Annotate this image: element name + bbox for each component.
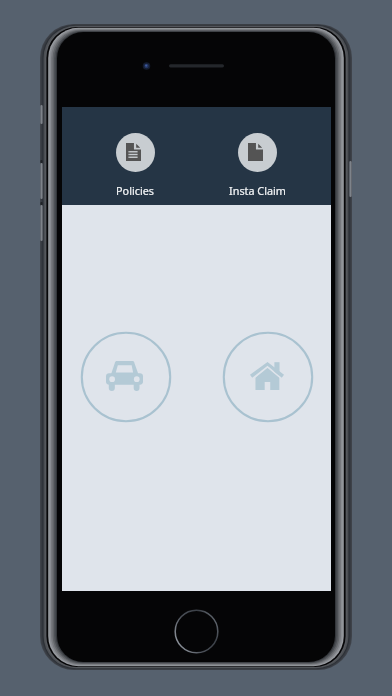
staticText: Insta Claim bbox=[229, 183, 286, 198]
staticText: Policies bbox=[116, 183, 154, 198]
button[interactable]: Insta Claim bbox=[215, 107, 299, 198]
button[interactable]: Home insurance bbox=[223, 332, 313, 422]
button[interactable]: Policies bbox=[93, 107, 177, 198]
button[interactable]: Auto insurance bbox=[81, 332, 171, 422]
